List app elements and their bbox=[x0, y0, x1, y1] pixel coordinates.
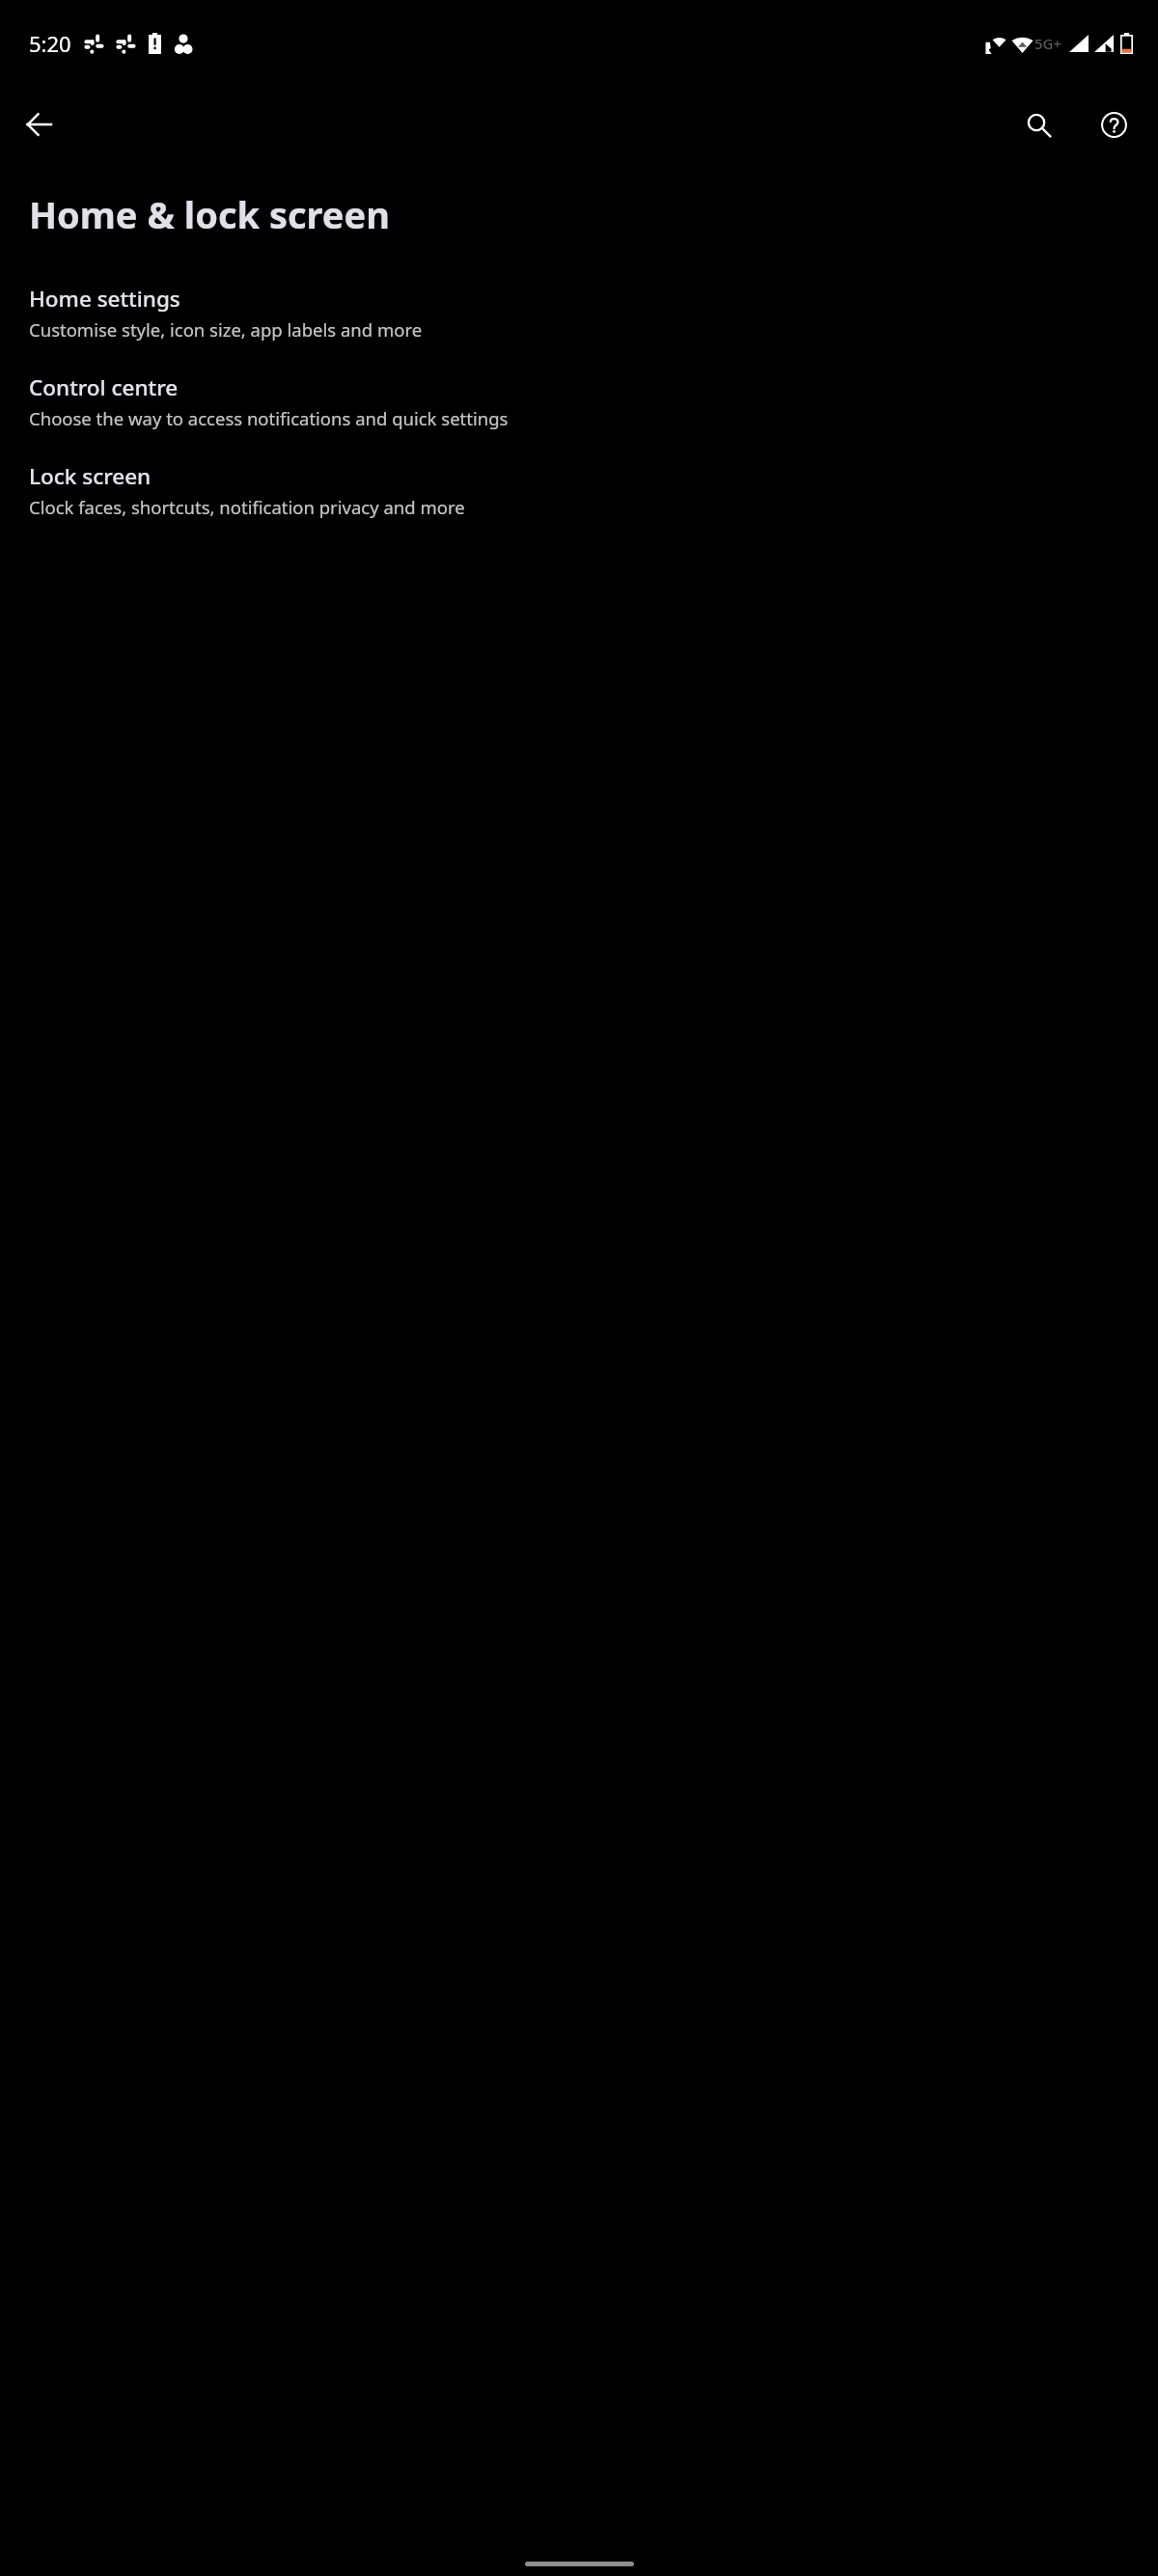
staticText: Home & lock screen bbox=[29, 189, 390, 239]
button[interactable]: Control centre bbox=[0, 363, 1158, 452]
staticText: Customise style, icon size, app labels a… bbox=[29, 317, 423, 342]
staticText: Control centre bbox=[29, 372, 179, 402]
staticText: Home settings bbox=[29, 284, 180, 314]
staticText: 5:20 bbox=[29, 29, 71, 58]
staticText: 5G+ bbox=[1034, 34, 1062, 53]
button[interactable]: Help bbox=[1087, 97, 1141, 151]
staticText: Lock screen bbox=[29, 461, 152, 491]
staticText: Clock faces, shortcuts, notification pri… bbox=[29, 495, 465, 519]
button[interactable]: Lock screen bbox=[0, 452, 1158, 540]
button[interactable]: Search bbox=[1011, 97, 1065, 151]
button[interactable]: Back bbox=[12, 97, 66, 151]
staticText: Choose the way to access notifications a… bbox=[29, 406, 509, 430]
button[interactable]: Home settings bbox=[0, 274, 1158, 363]
